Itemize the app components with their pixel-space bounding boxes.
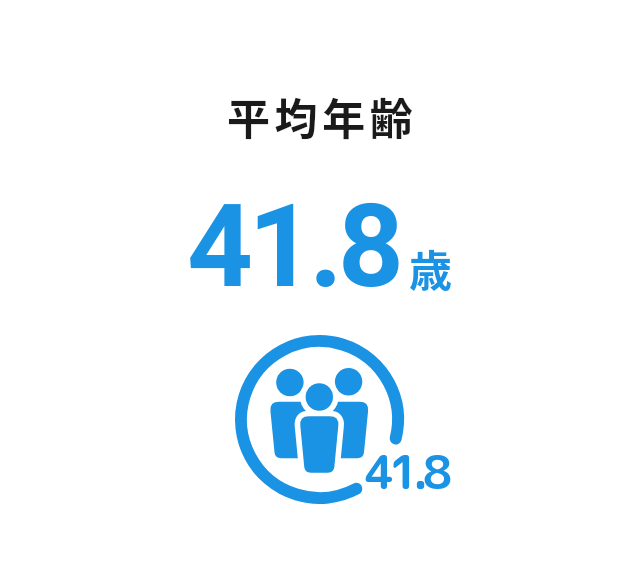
button[interactable]: Average age 41.8 xyxy=(230,330,410,510)
staticText: 41.8 xyxy=(187,179,400,314)
staticText: 41.8 xyxy=(365,440,447,504)
staticText: 平均年齢 xyxy=(227,85,418,147)
staticText: 歳 xyxy=(409,237,452,299)
